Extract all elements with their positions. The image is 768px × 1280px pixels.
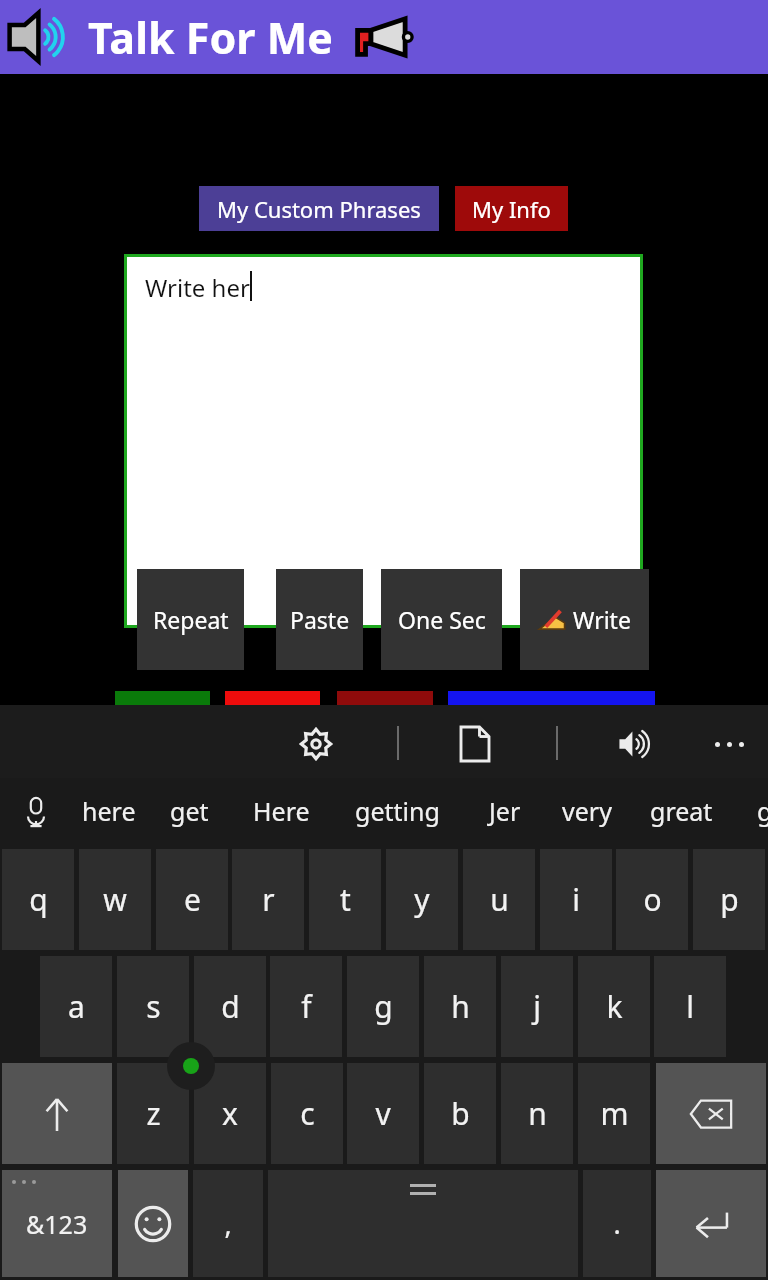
button[interactable]: t [309,849,381,950]
staticText: x [222,1093,238,1134]
button[interactable]: b [424,1063,496,1164]
staticText: w [103,879,127,920]
staticText: r [262,879,275,920]
button[interactable]: One Sec [381,569,502,670]
button[interactable]: p [693,849,765,950]
button[interactable]: m [578,1063,650,1164]
button[interactable]: Emoji [118,1170,188,1277]
button[interactable]: o [616,849,688,950]
button[interactable]: Space [268,1170,578,1277]
staticText: q [29,879,48,920]
button[interactable]: Paste [276,569,363,670]
button[interactable]: s [117,956,189,1057]
button[interactable]: j [501,956,573,1057]
button[interactable]: here [82,786,136,836]
button[interactable]: Enter [656,1170,766,1277]
staticText: f [301,986,312,1027]
button[interactable]: great [650,786,713,836]
staticText: s [146,986,161,1027]
staticText: k [606,986,623,1027]
button[interactable]: Repeat [137,569,244,670]
button[interactable]: g [347,956,419,1057]
button[interactable]: e [156,849,228,950]
button[interactable]: Sound [612,720,660,768]
button[interactable]: . [583,1170,651,1277]
button[interactable]: n [501,1063,573,1164]
button[interactable]: Symbols [2,1170,112,1277]
staticText: getting [355,794,440,828]
staticText: Write [573,604,631,635]
button[interactable]: v [347,1063,419,1164]
button[interactable]: My Info [455,186,568,231]
staticText: l [686,986,694,1027]
button[interactable]: y [386,849,458,950]
staticText: Jer [489,794,521,828]
staticText: Repeat [153,604,229,635]
staticText: t [340,879,351,920]
button[interactable]: x [194,1063,266,1164]
button[interactable]: u [463,849,535,950]
button[interactable]: c [271,1063,343,1164]
button[interactable]: k [578,956,650,1057]
button[interactable]: Here [253,786,310,836]
staticText: y [414,879,430,920]
staticText: g [374,986,393,1027]
staticText: n [528,1093,547,1134]
button[interactable]: q [2,849,74,950]
staticText: One Sec [398,604,486,635]
other: Speaker [6,7,78,67]
button[interactable]: Write [520,569,649,670]
button[interactable]: Clipboard [451,720,499,768]
staticText: Write her [145,271,250,304]
staticText: Here [253,794,310,828]
staticText: great [650,794,713,828]
button[interactable]: Shift [2,1063,112,1164]
button[interactable]: f [270,956,342,1057]
button[interactable]: l [654,956,726,1057]
staticText: c [300,1093,315,1134]
button[interactable]: i [540,849,612,950]
button[interactable]: More options [705,720,753,768]
button[interactable]: Write her [127,257,640,625]
button[interactable]: Jer [489,786,521,836]
button[interactable]: get [170,786,209,836]
other: Megaphone [351,13,417,61]
staticText: Talk For Me [88,8,333,67]
staticText: get [170,794,209,828]
staticText: h [451,986,470,1027]
button[interactable]: getting [355,786,440,836]
button[interactable]: Backspace [656,1063,766,1164]
staticText: a [68,986,85,1027]
staticText: here [82,794,136,828]
button[interactable]: g [757,786,768,836]
staticText: m [600,1093,629,1134]
button[interactable]: r [232,849,304,950]
staticText: g [757,794,768,828]
button[interactable]: Settings [292,720,340,768]
button[interactable]: d [194,956,266,1057]
staticText: j [533,986,541,1027]
staticText: d [221,986,240,1027]
button[interactable]: Cursor control [167,1042,215,1090]
button[interactable]: My Custom Phrases [199,186,439,231]
button[interactable]: Voice input [14,790,58,834]
staticText: e [184,879,201,920]
staticText: My Custom Phrases [217,194,421,224]
button[interactable]: h [424,956,496,1057]
button[interactable]: , [193,1170,263,1277]
button[interactable]: w [79,849,151,950]
staticText: o [643,879,662,920]
staticText: , [224,1205,232,1242]
staticText: very [562,794,612,828]
button[interactable]: a [40,956,112,1057]
staticText: My Info [472,194,551,224]
staticText: . [613,1205,621,1242]
button[interactable]: very [562,786,612,836]
staticText: b [451,1093,470,1134]
staticText: &123 [26,1207,88,1241]
button[interactable]: z [117,1063,189,1164]
